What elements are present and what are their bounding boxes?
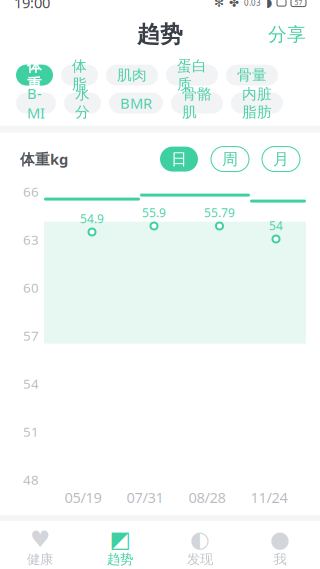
staticText: 周 (222, 149, 238, 169)
button[interactable]: 体重 (16, 65, 53, 86)
staticText: 11/24 (250, 488, 287, 507)
staticText: 内脏脂肪 (242, 85, 272, 121)
button[interactable]: 月 (262, 147, 300, 172)
staticText: 60 (23, 279, 39, 296)
button[interactable]: 肌肉 (106, 65, 158, 86)
staticText: 蛋白质 (177, 57, 207, 93)
button[interactable]: BMI (16, 93, 56, 114)
staticText: 54 (23, 375, 39, 392)
staticText: 月 (273, 149, 289, 169)
staticText: 54 (269, 218, 283, 233)
staticText: 水分 (75, 85, 90, 121)
button[interactable]: 蛋白质 (166, 65, 218, 86)
staticText: 健康 (27, 551, 53, 567)
staticText: 08/28 (188, 488, 225, 507)
staticText: 54.9 (80, 211, 104, 226)
staticText: 51 (23, 423, 39, 440)
button[interactable]: 分享 (254, 15, 320, 54)
staticText: ◗ (266, 0, 272, 9)
staticText: 66 (23, 183, 39, 200)
staticText: ◩ (109, 526, 130, 552)
staticText: 07/31 (126, 488, 163, 507)
staticText: ● (270, 526, 290, 552)
button[interactable]: 骨骼肌 (171, 93, 223, 114)
button[interactable]: 水分 (64, 93, 101, 114)
button[interactable]: ◩ (80, 525, 160, 569)
staticText: BMI (27, 84, 45, 123)
staticText: 55.79 (204, 205, 235, 220)
staticText: 我 (273, 551, 286, 567)
staticText: 趋势 (137, 21, 183, 48)
staticText: 日 (171, 149, 187, 169)
button[interactable]: 内脏脂肪 (231, 93, 283, 114)
button[interactable]: 日 (160, 147, 198, 172)
staticText: 57 (294, 0, 302, 7)
staticText: BMR (120, 93, 152, 113)
staticText: 肌肉 (117, 66, 147, 84)
button[interactable]: ♥ (0, 525, 80, 569)
staticText: ✻ (214, 0, 224, 9)
staticText: 分享 (268, 23, 306, 46)
button[interactable]: BMR (109, 93, 163, 114)
button[interactable]: 骨量 (226, 65, 278, 86)
staticText: 体脂 (72, 57, 87, 93)
staticText: 19:00 (14, 0, 50, 12)
button[interactable]: 周 (211, 147, 249, 172)
staticText: 趋势 (107, 551, 133, 567)
staticText: 骨量 (237, 66, 267, 84)
staticText: 发现 (187, 551, 213, 567)
staticText: ◐ (190, 526, 210, 552)
button[interactable]: ◐ (160, 525, 240, 569)
staticText: 55.9 (142, 205, 166, 220)
staticText: 体重kg (20, 149, 68, 169)
button[interactable]: ● (240, 525, 320, 569)
staticText: 05/19 (64, 488, 101, 507)
staticText: 48 (23, 471, 39, 488)
staticText: 骨骼肌 (182, 85, 212, 121)
button[interactable]: 体脂 (61, 65, 98, 86)
staticText: 0.03 (244, 0, 261, 8)
staticText: ♥ (30, 526, 50, 552)
staticText: 体重 (27, 57, 42, 93)
staticText: 57 (23, 327, 39, 344)
staticText: ✤ (229, 0, 239, 9)
staticText: 63 (23, 231, 39, 248)
